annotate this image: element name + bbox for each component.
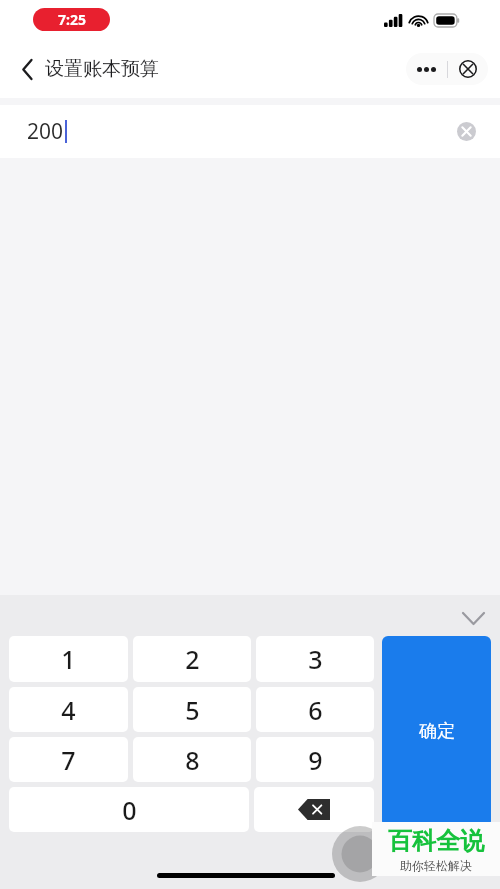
- button[interactable]: Hide keyboard: [454, 599, 492, 637]
- button[interactable]: 2: [133, 636, 251, 682]
- button[interactable]: 7: [9, 737, 128, 782]
- staticText: 7:25: [58, 10, 86, 29]
- staticText: 确定: [419, 720, 455, 743]
- staticText: 0: [122, 793, 137, 827]
- button[interactable]: 1: [9, 636, 128, 682]
- staticText: 2: [185, 642, 200, 676]
- staticText: 200: [27, 117, 64, 146]
- button[interactable]: 5: [133, 687, 251, 732]
- staticText: 5: [185, 693, 200, 727]
- button[interactable]: 确定: [382, 636, 491, 827]
- button[interactable]: 3: [256, 636, 374, 682]
- button[interactable]: Clear text: [457, 122, 476, 141]
- staticText: 8: [185, 743, 200, 777]
- staticText: 助你轻松解决: [400, 858, 472, 873]
- button[interactable]: 8: [133, 737, 251, 782]
- staticText: 1: [61, 642, 76, 676]
- staticText: 3: [308, 642, 323, 676]
- staticText: 7: [61, 743, 76, 777]
- button[interactable]: Backspace: [254, 787, 374, 832]
- button[interactable]: 4: [9, 687, 128, 732]
- staticText: 百科全说: [388, 826, 484, 856]
- button[interactable]: Close: [448, 53, 488, 85]
- staticText: 设置账本预算: [45, 57, 159, 81]
- staticText: 6: [308, 693, 323, 727]
- staticText: 9: [308, 743, 323, 777]
- staticText: 4: [61, 693, 76, 727]
- button[interactable]: 6: [256, 687, 374, 732]
- button[interactable]: 9: [256, 737, 374, 782]
- button[interactable]: 200: [0, 105, 500, 158]
- button[interactable]: 设置账本预算: [18, 51, 163, 87]
- button[interactable]: 0: [9, 787, 249, 832]
- button[interactable]: More options: [406, 53, 447, 85]
